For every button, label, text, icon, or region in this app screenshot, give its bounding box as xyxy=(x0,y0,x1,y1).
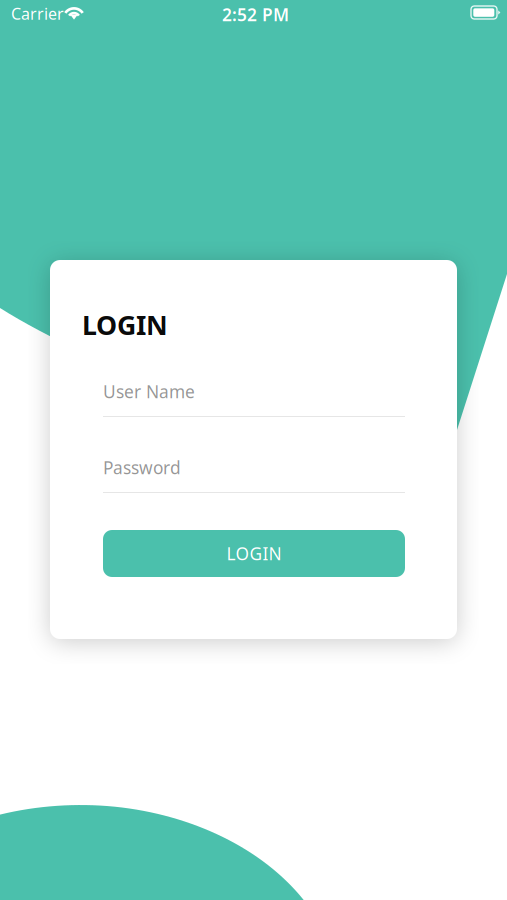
staticText: Carrier xyxy=(11,3,64,24)
staticText: LOGIN xyxy=(82,307,168,342)
button[interactable]: LOGIN xyxy=(103,530,405,577)
button[interactable]: Password xyxy=(103,456,405,493)
button[interactable]: User Name xyxy=(103,380,405,417)
staticText: 2:52 PM xyxy=(222,3,289,26)
staticText: User Name xyxy=(103,380,195,403)
staticText: LOGIN xyxy=(226,542,281,565)
staticText: Password xyxy=(103,456,181,479)
